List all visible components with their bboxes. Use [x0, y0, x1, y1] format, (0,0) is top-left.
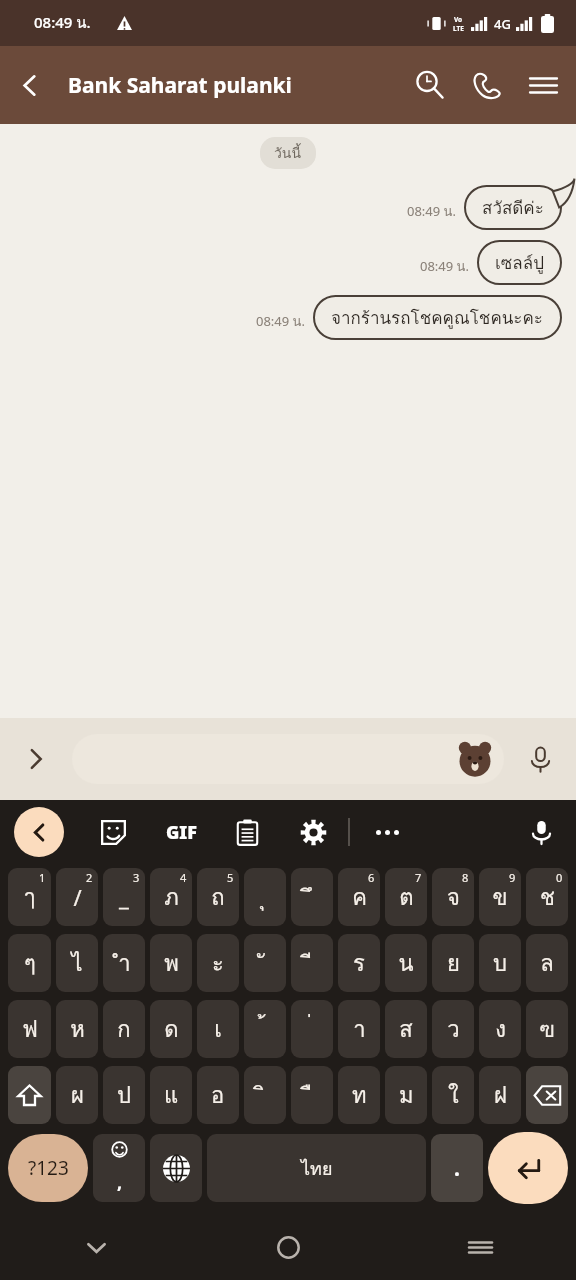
staticText: ส: [399, 1012, 413, 1047]
staticText: ไทย: [301, 1154, 333, 1183]
staticText: บ: [493, 946, 507, 981]
staticText: อ: [211, 1078, 225, 1113]
button[interactable]: ถ: [197, 868, 239, 926]
staticText: 7: [415, 870, 422, 885]
button[interactable]: Voice input: [520, 811, 562, 853]
button[interactable]: อ: [197, 1066, 239, 1124]
staticText: LTE: [453, 24, 464, 33]
button[interactable]: ำ: [103, 934, 145, 992]
button[interactable]: Home: [192, 1214, 384, 1280]
button[interactable]: ไ: [56, 934, 98, 992]
button[interactable]: ๅ: [8, 868, 51, 926]
button[interactable]: ด: [150, 1000, 192, 1058]
button[interactable]: จากร้านรถโชคคูณโชคนะคะ: [313, 295, 562, 340]
button[interactable]: เ: [197, 1000, 239, 1058]
staticText: ด: [164, 1012, 179, 1047]
button[interactable]: ฟ: [8, 1000, 51, 1058]
button[interactable]: ม: [385, 1066, 427, 1124]
button[interactable]: น: [385, 934, 427, 992]
button[interactable]: ะ: [197, 934, 239, 992]
button[interactable]: ล: [526, 934, 568, 992]
button[interactable]: ง: [479, 1000, 521, 1058]
button[interactable]: Call: [458, 57, 514, 113]
button[interactable]: Recent apps: [384, 1214, 576, 1280]
button[interactable]: ป: [103, 1066, 145, 1124]
staticText: Vo: [454, 15, 463, 24]
button[interactable]: Stickers: [457, 741, 493, 777]
button[interactable]: ค: [338, 868, 380, 926]
button[interactable]: Back: [0, 56, 58, 114]
button[interactable]: More options: [368, 813, 406, 851]
staticText: /: [73, 882, 82, 912]
button[interactable]: ร: [338, 934, 380, 992]
button[interactable]: ?123: [8, 1134, 88, 1202]
button[interactable]: Enter: [488, 1132, 568, 1204]
button[interactable]: Expand menu: [0, 723, 72, 795]
button[interactable]: ก: [103, 1000, 145, 1058]
button[interactable]: _: [103, 868, 145, 926]
button[interactable]: Stickers: [72, 734, 504, 784]
button[interactable]: ส: [385, 1000, 427, 1058]
button[interactable]: Shift: [8, 1066, 51, 1124]
button[interactable]: สวัสดีค่ะ: [464, 185, 562, 230]
button[interactable]: ี: [291, 934, 333, 992]
button[interactable]: า: [338, 1000, 380, 1058]
button[interactable]: Menu: [514, 56, 572, 114]
button[interactable]: ต: [385, 868, 427, 926]
button[interactable]: ผ: [56, 1066, 98, 1124]
button[interactable]: Change language: [150, 1134, 202, 1202]
button[interactable]: ข: [479, 868, 521, 926]
staticText: 9: [509, 870, 516, 885]
button[interactable]: แ: [150, 1066, 192, 1124]
button[interactable]: ๆ: [8, 934, 51, 992]
button[interactable]: ใ: [432, 1066, 474, 1124]
staticText: ฟ: [22, 1012, 38, 1047]
button[interactable]: ห: [56, 1000, 98, 1058]
button[interactable]: ฃ: [526, 1000, 568, 1058]
button[interactable]: ช: [526, 868, 568, 926]
button[interactable]: Hide keyboard: [0, 1214, 192, 1280]
staticText: 08:49 น.: [34, 11, 91, 35]
button[interactable]: Search: [402, 57, 458, 113]
button[interactable]: ั: [244, 934, 286, 992]
button[interactable]: ่: [291, 1000, 333, 1058]
button[interactable]: ไทย: [207, 1134, 426, 1202]
button[interactable]: จ: [432, 868, 474, 926]
button[interactable]: ุ: [244, 868, 286, 926]
button[interactable]: /: [56, 868, 98, 926]
button[interactable]: .: [431, 1134, 483, 1202]
staticText: เซลล์ปู: [495, 249, 544, 276]
button[interactable]: Stickers: [94, 813, 132, 851]
button[interactable]: Emoji and comma: [93, 1134, 145, 1202]
button[interactable]: ึ: [291, 868, 333, 926]
staticText: ฝ: [494, 1078, 507, 1113]
button[interactable]: GIF: [162, 813, 200, 851]
staticText: ท: [352, 1078, 367, 1113]
staticText: ร: [353, 946, 365, 981]
button[interactable]: เซลล์ปู: [477, 240, 562, 285]
staticText: จ: [447, 880, 460, 915]
button[interactable]: ิ: [244, 1066, 286, 1124]
staticText: 0: [556, 870, 563, 885]
staticText: _: [119, 882, 129, 912]
button[interactable]: Backspace: [526, 1066, 568, 1124]
button[interactable]: Close keyboard toolbar: [14, 807, 64, 857]
button[interactable]: ื: [291, 1066, 333, 1124]
staticText: ว: [447, 1012, 460, 1047]
button[interactable]: ้: [244, 1000, 286, 1058]
button[interactable]: Clipboard: [228, 813, 266, 851]
button[interactable]: Voice message: [504, 723, 576, 795]
button[interactable]: Settings: [294, 813, 332, 851]
staticText: 6: [368, 870, 375, 885]
button[interactable]: ภ: [150, 868, 192, 926]
staticText: 4G: [494, 15, 511, 33]
staticText: ๅ: [24, 880, 35, 915]
button[interactable]: พ: [150, 934, 192, 992]
button[interactable]: ย: [432, 934, 474, 992]
staticText: 08:49 น.: [256, 311, 305, 332]
button[interactable]: ว: [432, 1000, 474, 1058]
button[interactable]: ฝ: [479, 1066, 521, 1124]
button[interactable]: บ: [479, 934, 521, 992]
staticText: ป: [117, 1078, 131, 1113]
button[interactable]: ท: [338, 1066, 380, 1124]
